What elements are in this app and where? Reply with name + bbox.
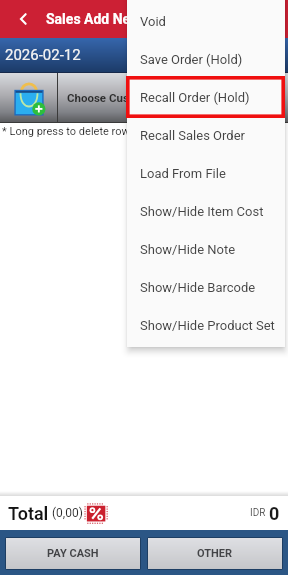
staticText: Recall Order (Hold) bbox=[140, 90, 250, 105]
button[interactable]: Add customer bbox=[0, 73, 57, 122]
staticText: 0 bbox=[269, 503, 280, 524]
button[interactable]: Recall Order (Hold) bbox=[127, 78, 285, 116]
staticText: PAY CASH bbox=[47, 547, 99, 560]
staticText: Void bbox=[140, 14, 166, 29]
staticText: Show/Hide Product Set bbox=[140, 318, 275, 333]
button[interactable]: Back bbox=[13, 9, 33, 29]
button[interactable]: OTHER bbox=[148, 538, 282, 569]
staticText: Recall Sales Order bbox=[140, 128, 245, 143]
button[interactable]: Show/Hide Item Cost bbox=[127, 192, 285, 230]
button[interactable]: Show/Hide Barcode bbox=[127, 268, 285, 306]
button[interactable]: Show/Hide Note bbox=[127, 230, 285, 268]
staticText: Show/Hide Note bbox=[140, 242, 236, 257]
staticText: Choose Customer bbox=[67, 91, 160, 104]
staticText: Total bbox=[8, 503, 49, 524]
button[interactable]: Recall Sales Order bbox=[127, 116, 285, 154]
button[interactable]: Void bbox=[127, 2, 285, 40]
staticText: Show/Hide Item Cost bbox=[140, 204, 264, 219]
staticText: Sales Add New bbox=[46, 11, 141, 27]
staticText: 2026-02-12 bbox=[5, 46, 81, 64]
button[interactable]: Load From File bbox=[127, 154, 285, 192]
button[interactable]: Discount bbox=[83, 500, 106, 523]
button[interactable]: Save Order (Hold) bbox=[127, 40, 285, 78]
button[interactable]: Show/Hide Product Set bbox=[127, 306, 285, 344]
button[interactable]: PAY CASH bbox=[6, 538, 140, 569]
button[interactable]: Choose Customer bbox=[58, 73, 288, 122]
staticText: * Long press to delete row bbox=[2, 125, 130, 138]
staticText: Show/Hide Barcode bbox=[140, 280, 256, 295]
staticText: Load From File bbox=[140, 166, 226, 181]
staticText: IDR bbox=[250, 507, 266, 519]
staticText: OTHER bbox=[197, 547, 233, 560]
staticText: Save Order (Hold) bbox=[140, 52, 243, 67]
staticText: (0,00) bbox=[52, 506, 83, 520]
